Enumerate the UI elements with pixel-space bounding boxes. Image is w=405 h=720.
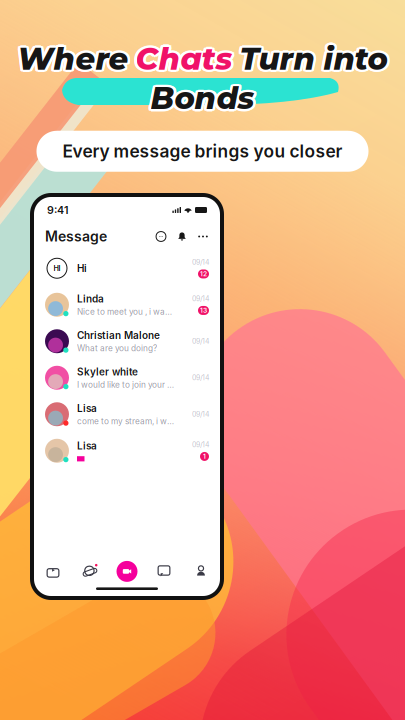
staticText: Chats bbox=[133, 41, 230, 79]
staticText: Chats bbox=[138, 41, 235, 79]
staticText: Chats bbox=[133, 39, 230, 76]
button[interactable]: Discover bbox=[71, 556, 108, 586]
button[interactable]: Video call bbox=[108, 556, 145, 586]
staticText: Bonds bbox=[150, 82, 254, 119]
staticText: Christian Malone bbox=[77, 329, 160, 341]
staticText: Bonds bbox=[152, 78, 256, 115]
staticText: What are you doing? bbox=[77, 343, 157, 353]
staticText: Turn into bbox=[241, 38, 389, 76]
staticText: Turn into bbox=[242, 41, 390, 79]
staticText: 9:41 bbox=[47, 203, 69, 216]
staticText: 09/14 bbox=[192, 295, 209, 303]
staticText: Where bbox=[19, 42, 130, 79]
staticText: Chats bbox=[135, 38, 232, 75]
staticText: 09/14 bbox=[192, 374, 209, 382]
staticText: Turn into bbox=[239, 38, 387, 75]
staticText: Chats bbox=[135, 40, 232, 77]
staticText: Every message brings you closer bbox=[62, 141, 342, 162]
staticText: Nice to meet you , i want to chat with y… bbox=[77, 307, 174, 317]
staticText: Bonds bbox=[153, 81, 257, 118]
staticText: Bonds bbox=[148, 81, 252, 118]
staticText: Message bbox=[45, 228, 107, 245]
staticText: Lisa bbox=[77, 440, 97, 452]
staticText: Where bbox=[16, 38, 127, 76]
button[interactable]: Linda bbox=[34, 286, 220, 323]
staticText: Lisa bbox=[77, 402, 97, 414]
staticText: Turn into bbox=[242, 40, 390, 77]
staticText: 13 bbox=[200, 306, 207, 314]
button[interactable]: Moods bbox=[155, 230, 167, 242]
staticText: 09/14 bbox=[192, 258, 209, 266]
staticText: Chats bbox=[138, 40, 235, 77]
staticText: 09/14 bbox=[192, 441, 209, 449]
button[interactable]: Lisa bbox=[34, 396, 220, 432]
staticText: Bonds bbox=[150, 77, 254, 114]
staticText: Bonds bbox=[148, 79, 252, 117]
button[interactable]: Notifications bbox=[167, 230, 188, 242]
button[interactable]: Lisa bbox=[34, 432, 220, 469]
staticText: Turn into bbox=[239, 40, 387, 77]
staticText: HI bbox=[53, 264, 60, 273]
staticText: Turn into bbox=[241, 42, 389, 79]
staticText: I would like to join your stream bbox=[77, 380, 174, 390]
staticText: Turn into bbox=[237, 39, 385, 76]
staticText: Where bbox=[17, 40, 128, 77]
staticText: Where bbox=[19, 38, 130, 76]
staticText: 1 bbox=[203, 452, 206, 460]
staticText: Bonds bbox=[149, 78, 253, 115]
staticText: Turn into bbox=[242, 39, 390, 76]
staticText: Chats bbox=[134, 38, 231, 76]
staticText: Chats bbox=[133, 40, 230, 77]
staticText: Bonds bbox=[153, 79, 257, 117]
button[interactable]: Christian Malone bbox=[34, 323, 220, 359]
staticText: Turn into bbox=[239, 42, 387, 80]
staticText: Bonds bbox=[153, 78, 257, 116]
staticText: 09/14 bbox=[192, 410, 209, 418]
staticText: Where bbox=[15, 39, 126, 76]
staticText: Chats bbox=[135, 42, 232, 80]
staticText: come to my stream, i will show you like bbox=[77, 416, 174, 426]
staticText: Where bbox=[16, 42, 127, 79]
button[interactable]: Skyler white bbox=[34, 359, 220, 396]
staticText: Chats bbox=[134, 42, 231, 79]
staticText: Turn into bbox=[238, 38, 386, 76]
staticText: Bonds bbox=[150, 79, 254, 117]
staticText: Chats bbox=[137, 38, 234, 76]
staticText: 12 bbox=[200, 270, 207, 278]
staticText: Turn into bbox=[237, 40, 385, 77]
staticText: Where bbox=[15, 41, 126, 79]
staticText: Turn into bbox=[238, 42, 386, 79]
staticText: Bonds bbox=[152, 81, 256, 119]
button[interactable]: HI bbox=[34, 250, 220, 286]
staticText: Bonds bbox=[149, 81, 253, 119]
staticText: Chats bbox=[137, 42, 234, 79]
staticText: Linda bbox=[77, 293, 104, 305]
staticText: 09/14 bbox=[192, 337, 209, 345]
button[interactable]: Profile bbox=[182, 556, 219, 586]
button[interactable]: Messages bbox=[145, 556, 182, 586]
staticText: Where bbox=[20, 41, 131, 79]
staticText: Where bbox=[15, 40, 126, 77]
staticText: Where bbox=[20, 39, 131, 76]
staticText: Bonds bbox=[148, 78, 252, 116]
staticText: Hi bbox=[77, 262, 87, 274]
button[interactable]: Live bbox=[34, 556, 71, 586]
staticText: Chats bbox=[138, 39, 235, 76]
staticText: Skyler white bbox=[77, 366, 138, 378]
button[interactable]: More bbox=[188, 230, 209, 242]
staticText: Where bbox=[17, 38, 128, 75]
staticText: Turn into bbox=[237, 41, 385, 79]
staticText: Where bbox=[20, 40, 131, 77]
staticText: Where bbox=[17, 42, 128, 80]
